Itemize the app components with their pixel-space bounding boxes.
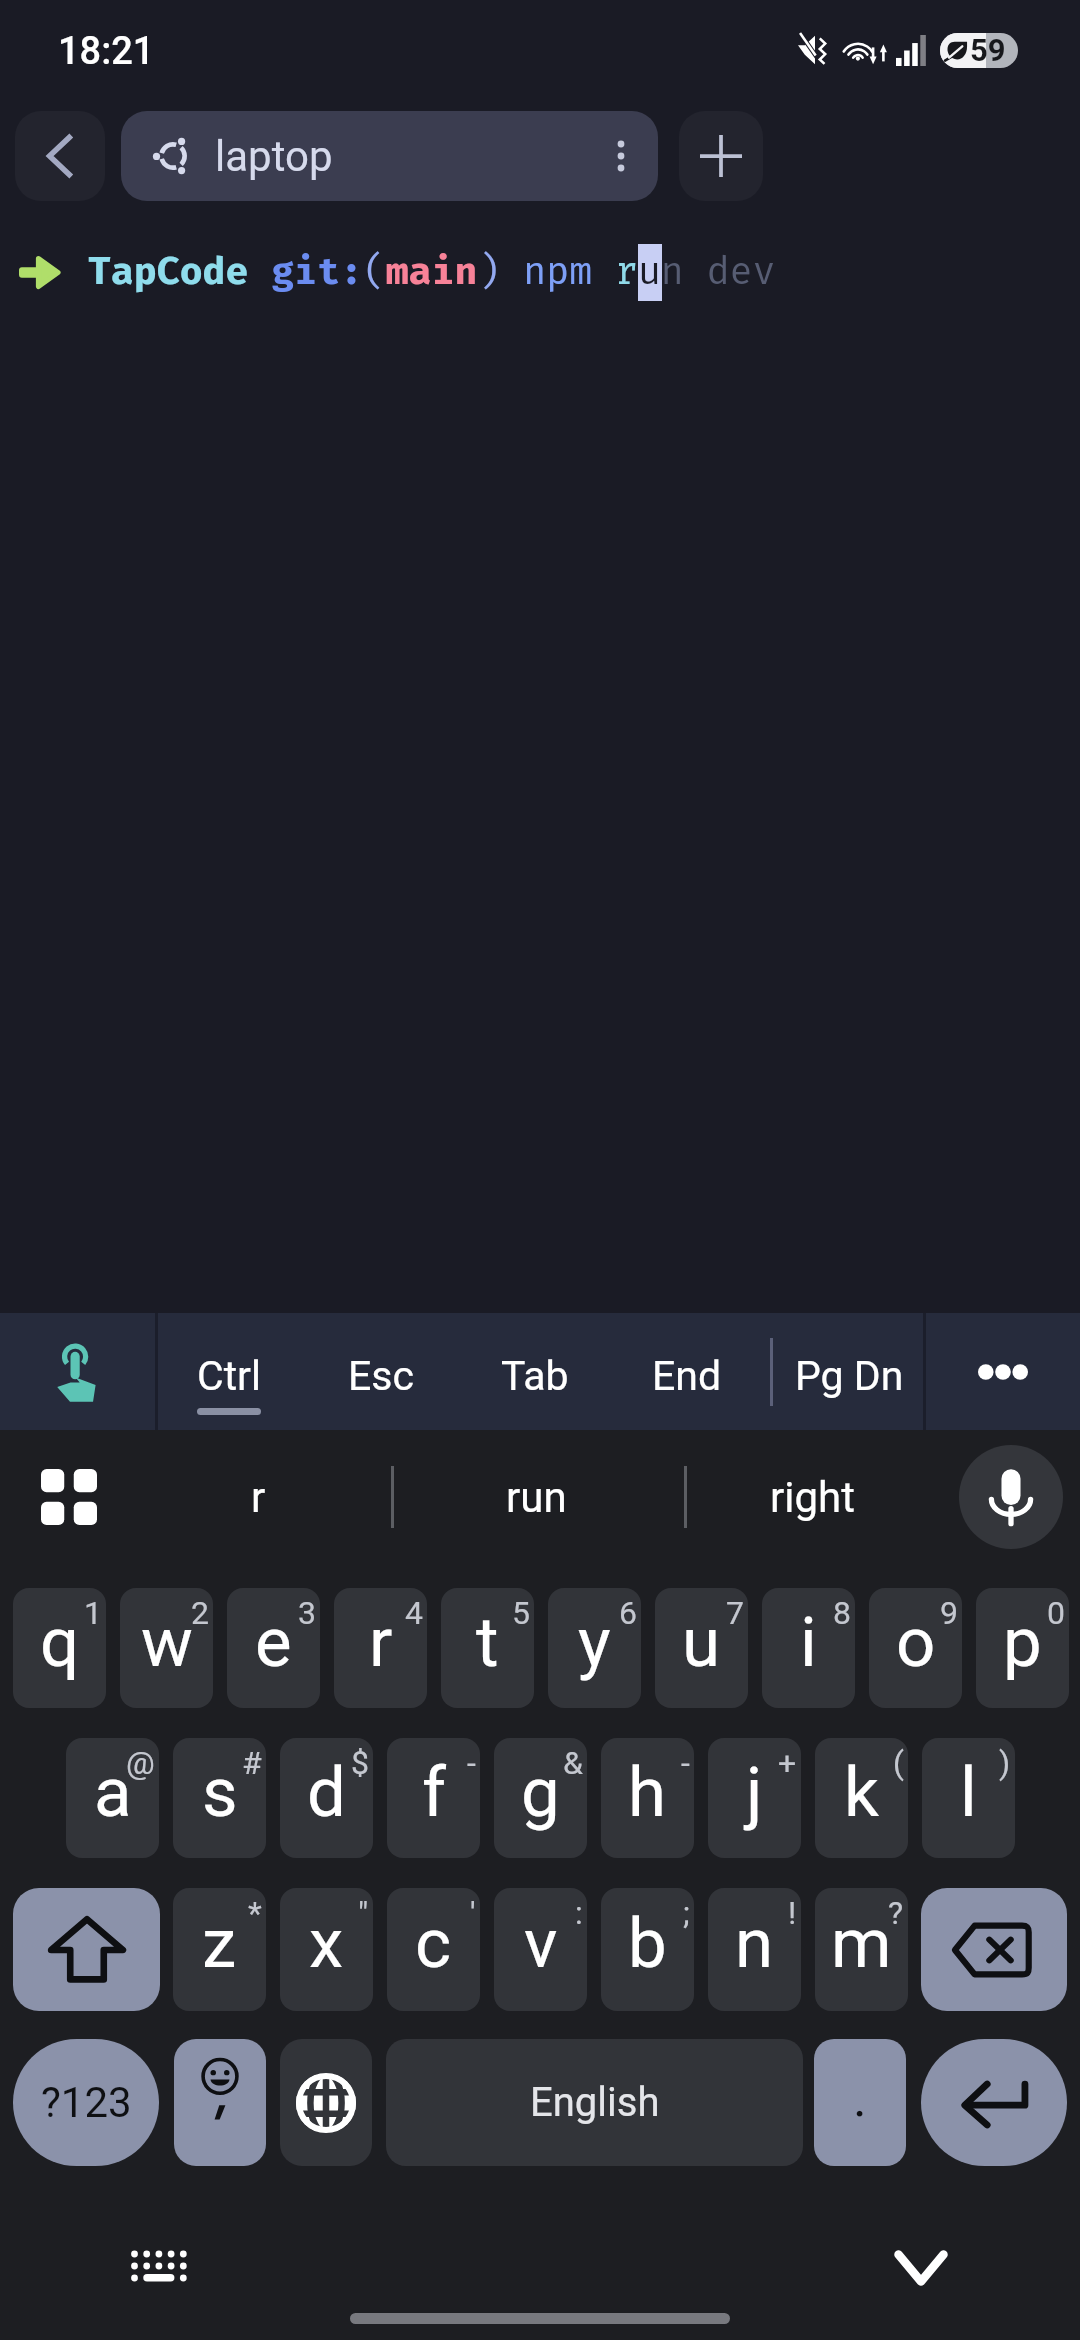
staticText: English — [530, 2079, 660, 2126]
staticText: $ — [351, 1744, 369, 1782]
button[interactable]: h — [601, 1738, 694, 1858]
button[interactable]: Back — [15, 111, 105, 201]
staticText: End — [652, 1352, 722, 1400]
staticText: Esc — [348, 1352, 414, 1400]
button[interactable]: Tab — [459, 1313, 611, 1431]
staticText: . — [853, 2068, 867, 2129]
staticText: right — [770, 1473, 855, 1522]
button[interactable]: ?123 — [13, 2039, 159, 2166]
staticText: y — [578, 1602, 611, 1683]
staticText: 0 — [1047, 1594, 1065, 1632]
staticText: q — [40, 1602, 80, 1683]
staticText: o — [896, 1602, 936, 1683]
staticText: 5 — [512, 1594, 530, 1632]
button[interactable]: Voice input — [959, 1445, 1063, 1549]
button[interactable]: o — [869, 1588, 962, 1708]
button[interactable]: Clipboard — [29, 1457, 109, 1537]
button[interactable]: p — [976, 1588, 1069, 1708]
button[interactable]: r — [188, 1445, 328, 1549]
staticText: m — [831, 1903, 892, 1984]
button[interactable]: Shift — [13, 1888, 160, 2011]
button[interactable]: Esc — [305, 1313, 457, 1431]
button[interactable]: . — [814, 2039, 906, 2166]
button[interactable]: w — [120, 1588, 213, 1708]
button[interactable]: k — [815, 1738, 908, 1858]
staticText: z — [202, 1903, 237, 1984]
staticText: ' — [470, 1894, 476, 1932]
button[interactable]: q — [13, 1588, 106, 1708]
staticText: u — [682, 1602, 721, 1683]
staticText: ) — [999, 1744, 1011, 1782]
staticText: f — [422, 1752, 446, 1833]
button[interactable]: Pg Dn — [773, 1313, 925, 1431]
button[interactable]: More keys — [926, 1313, 1080, 1431]
staticText: t — [476, 1602, 499, 1683]
button[interactable]: Backspace — [921, 1888, 1067, 2011]
staticText: v — [524, 1903, 558, 1984]
staticText: w — [141, 1602, 193, 1683]
button[interactable]: Change language — [280, 2039, 372, 2166]
staticText: laptop — [215, 132, 333, 181]
button[interactable]: English — [386, 2039, 803, 2166]
button[interactable]: Session menu — [584, 111, 658, 201]
staticText: 1 — [84, 1594, 102, 1632]
button[interactable]: m — [815, 1888, 908, 2011]
button[interactable]: u — [655, 1588, 748, 1708]
button[interactable]: x — [280, 1888, 373, 2011]
staticText: 4 — [405, 1594, 423, 1632]
button[interactable]: d — [280, 1738, 373, 1858]
staticText: s — [202, 1752, 238, 1833]
staticText: ? — [888, 1894, 904, 1932]
staticText: k — [844, 1752, 879, 1833]
button[interactable]: Ctrl — [153, 1313, 305, 1431]
button[interactable]: j — [708, 1738, 801, 1858]
staticText: j — [746, 1752, 763, 1833]
button[interactable]: Emoji — [174, 2039, 266, 2166]
button[interactable]: Enter — [921, 2039, 1067, 2166]
button[interactable]: a — [66, 1738, 159, 1858]
button[interactable]: End — [611, 1313, 763, 1431]
staticText: p — [1003, 1602, 1042, 1683]
button[interactable]: b — [601, 1888, 694, 2011]
button[interactable]: r — [334, 1588, 427, 1708]
staticText: r — [369, 1602, 393, 1683]
button[interactable]: New session — [679, 111, 763, 201]
staticText: * — [248, 1894, 262, 1932]
staticText: # — [242, 1744, 262, 1782]
staticText: Tab — [501, 1352, 569, 1400]
staticText: 7 — [726, 1594, 744, 1632]
staticText: e — [255, 1602, 292, 1683]
staticText: 59 — [970, 33, 1006, 67]
staticText: ! — [788, 1894, 797, 1932]
button[interactable]: Switch keyboard — [119, 2240, 199, 2296]
button[interactable]: v — [494, 1888, 587, 2011]
button[interactable]: t — [441, 1588, 534, 1708]
staticText: 3 — [298, 1594, 316, 1632]
button[interactable]: y — [548, 1588, 641, 1708]
button[interactable]: e — [227, 1588, 320, 1708]
button[interactable]: f — [387, 1738, 480, 1858]
button[interactable]: c — [387, 1888, 480, 2011]
staticText: 6 — [619, 1594, 637, 1632]
staticText: h — [628, 1752, 667, 1833]
button[interactable]: n — [708, 1888, 801, 2011]
button[interactable]: s — [173, 1738, 266, 1858]
staticText: ?123 — [41, 2078, 132, 2127]
staticText: @ — [126, 1744, 155, 1782]
button[interactable]: z — [173, 1888, 266, 2011]
staticText: b — [628, 1903, 667, 1984]
button[interactable]: l — [922, 1738, 1015, 1858]
staticText: " — [358, 1894, 369, 1932]
button[interactable]: laptop — [121, 111, 658, 201]
staticText: d — [307, 1752, 346, 1833]
button[interactable]: i — [762, 1588, 855, 1708]
button[interactable]: right — [742, 1445, 882, 1549]
staticText: 9 — [940, 1594, 958, 1632]
button[interactable]: run — [466, 1445, 606, 1549]
staticText: i — [800, 1602, 817, 1683]
button[interactable]: Toggle touch mode — [0, 1313, 155, 1431]
staticText: TapCode git:(main) npm run dev — [88, 248, 776, 294]
button[interactable]: g — [494, 1738, 587, 1858]
staticText: ( — [893, 1744, 904, 1782]
button[interactable]: Hide keyboard — [878, 2240, 966, 2296]
